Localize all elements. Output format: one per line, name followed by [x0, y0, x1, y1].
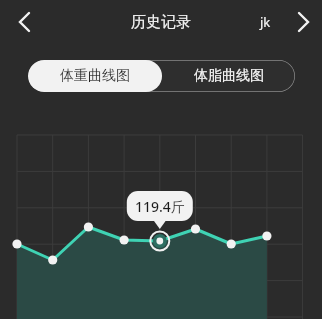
button[interactable]: 体脂曲线图 — [162, 60, 295, 92]
button[interactable]: Back — [4, 2, 44, 42]
staticText: jk — [260, 13, 271, 31]
staticText: 体重曲线图 — [60, 67, 130, 85]
button[interactable]: jk — [258, 2, 316, 42]
button[interactable]: 体重曲线图 — [28, 60, 162, 92]
staticText: 历史记录 — [131, 13, 191, 32]
staticText: 119.4斤 — [135, 197, 185, 216]
staticText: 体脂曲线图 — [194, 67, 264, 85]
button[interactable]: 119.4斤 — [127, 191, 193, 221]
